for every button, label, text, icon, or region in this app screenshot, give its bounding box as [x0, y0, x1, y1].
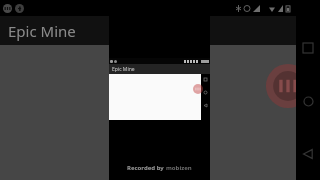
staticText: Epic Mine [112, 66, 135, 73]
button[interactable]: Epic Mine [0, 16, 320, 45]
button[interactable]: Home [298, 91, 318, 111]
staticText: mobizen [166, 164, 192, 172]
staticText: Recorded by [127, 164, 164, 172]
staticText: Epic Mine [8, 21, 76, 41]
button[interactable]: Back [298, 144, 318, 164]
button[interactable]: Recents [298, 38, 318, 58]
